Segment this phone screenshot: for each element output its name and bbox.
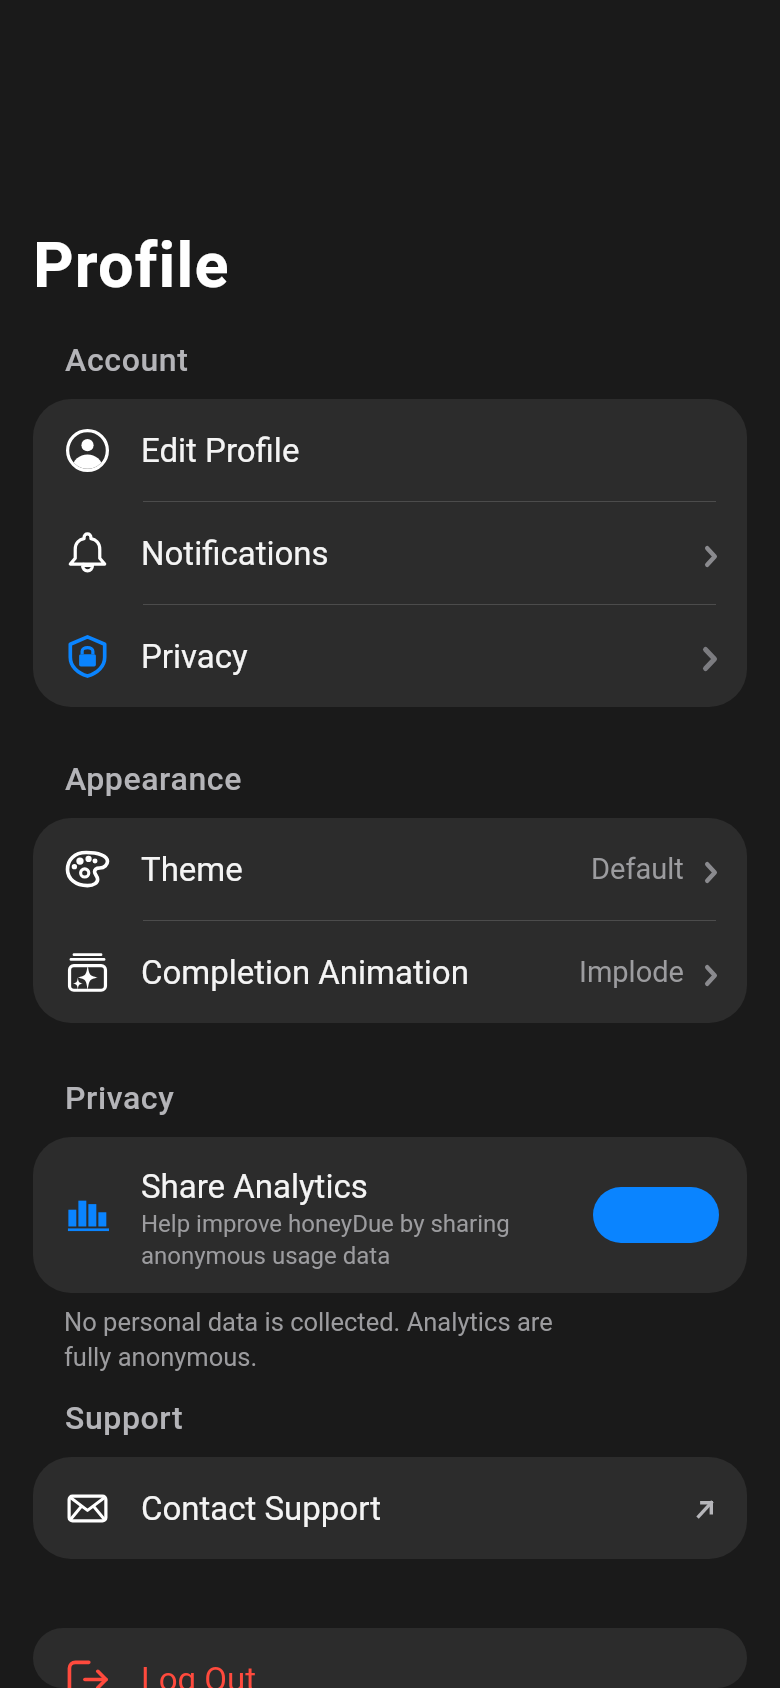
staticText: Edit Profile xyxy=(141,431,300,470)
staticText: No personal data is collected. Analytics… xyxy=(64,1307,553,1372)
button[interactable]: Completion Animation xyxy=(33,921,747,1023)
staticText: Default xyxy=(591,852,684,886)
button[interactable]: Log Out xyxy=(33,1628,747,1688)
staticText: Contact Support xyxy=(141,1489,381,1528)
staticText: Theme xyxy=(141,850,243,889)
other: Opens external link xyxy=(697,1501,713,1518)
staticText: Profile xyxy=(33,229,230,303)
staticText: Implode xyxy=(579,955,684,989)
button[interactable]: Privacy xyxy=(33,605,747,707)
button[interactable]: Share analytics toggle, on xyxy=(593,1187,719,1243)
staticText: Completion Animation xyxy=(141,953,469,992)
button[interactable]: Notifications xyxy=(33,502,747,604)
staticText: Privacy xyxy=(65,1079,175,1117)
button[interactable]: Contact Support xyxy=(33,1457,747,1559)
staticText: Notifications xyxy=(141,534,329,573)
staticText: Account xyxy=(65,341,189,379)
button[interactable]: Edit Profile xyxy=(33,399,747,501)
button[interactable]: Theme xyxy=(33,818,747,920)
staticText: Log Out xyxy=(141,1660,257,1688)
staticText: Privacy xyxy=(141,637,248,676)
button[interactable]: Share Analytics xyxy=(33,1137,747,1293)
staticText: Appearance xyxy=(65,760,242,798)
staticText: Support xyxy=(65,1399,184,1437)
staticText: Help improve honeyDue by sharing anonymo… xyxy=(141,1210,510,1269)
staticText: Share Analytics xyxy=(141,1167,368,1206)
